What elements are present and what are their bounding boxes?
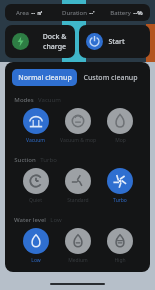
button[interactable]: Duration	[54, 4, 102, 21]
button[interactable]: Vacuum	[14, 108, 57, 144]
staticText: Modes	[14, 96, 34, 104]
staticText: Area	[16, 9, 29, 17]
staticText: Vacuum	[38, 96, 61, 104]
button[interactable]: Medium	[57, 228, 99, 264]
staticText: Quiet	[29, 197, 42, 204]
staticText: Custom cleanup	[83, 73, 138, 83]
staticText: Low	[50, 216, 62, 224]
button[interactable]: Standard	[57, 168, 99, 204]
staticText: Suction	[14, 156, 36, 164]
staticText: Standard	[67, 197, 89, 204]
button[interactable]: Area	[5, 4, 150, 21]
button[interactable]: Turbo	[99, 168, 141, 204]
staticText: Vacuum & mop	[60, 137, 96, 144]
button[interactable]: Area	[5, 4, 54, 21]
button[interactable]: Vacuum & mop	[57, 108, 99, 144]
button[interactable]: High	[99, 228, 141, 264]
staticText: Vacuum	[26, 137, 45, 144]
button[interactable]: Dock & charge	[5, 25, 75, 58]
staticText: Mop	[115, 137, 126, 144]
staticText: Turbo	[113, 197, 127, 204]
staticText: Battery	[110, 9, 131, 17]
staticText: Dock & charge	[34, 32, 75, 52]
button[interactable]: Normal cleanup	[12, 69, 77, 86]
staticText: High	[114, 257, 126, 264]
staticText: Normal cleanup	[18, 73, 72, 83]
staticText: -- ㎡	[31, 9, 43, 17]
staticText: Medium	[68, 257, 88, 264]
button[interactable]: Mop	[99, 108, 141, 144]
button[interactable]: Quiet	[14, 168, 57, 204]
button[interactable]: Low	[14, 228, 57, 264]
staticText: Turbo	[40, 156, 57, 164]
button[interactable]: Start	[79, 25, 150, 58]
staticText: --%	[133, 9, 143, 17]
staticText: Low	[31, 257, 41, 264]
staticText: Water level	[14, 216, 46, 224]
staticText: Duration	[62, 9, 87, 17]
button[interactable]: Custom cleanup	[77, 69, 143, 86]
button[interactable]: Battery	[102, 4, 150, 21]
staticText: --'	[89, 9, 95, 17]
staticText: Start	[108, 37, 125, 47]
